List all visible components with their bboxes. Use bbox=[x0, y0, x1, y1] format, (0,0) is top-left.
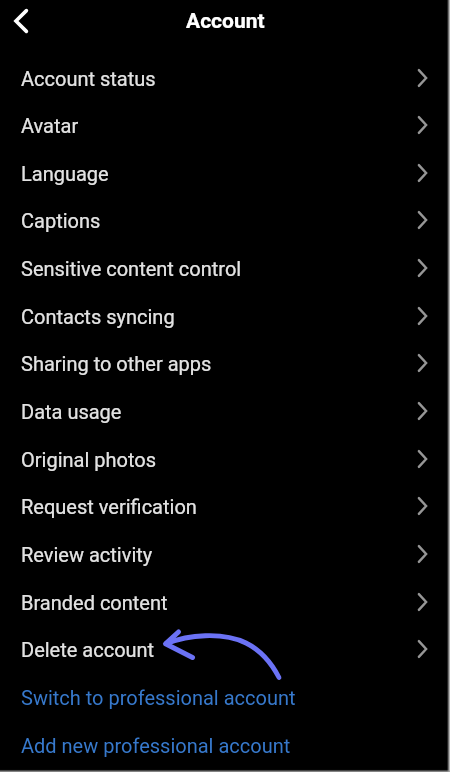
staticText: Language bbox=[21, 162, 109, 185]
staticText: Request verification bbox=[21, 495, 197, 518]
staticText: Contacts syncing bbox=[21, 305, 175, 328]
staticText: Captions bbox=[21, 209, 101, 232]
staticText: Original photos bbox=[21, 448, 156, 471]
button[interactable]: Language bbox=[0, 149, 450, 197]
button[interactable]: Request verification bbox=[0, 482, 450, 530]
staticText: Data usage bbox=[21, 400, 122, 423]
staticText: Avatar bbox=[21, 114, 79, 137]
staticText: Sensitive content control bbox=[21, 257, 242, 280]
button[interactable]: Avatar bbox=[0, 101, 450, 149]
staticText: Account bbox=[186, 9, 265, 34]
button[interactable]: Review activity bbox=[0, 530, 450, 578]
staticText: Account status bbox=[21, 67, 156, 90]
button[interactable]: Account status bbox=[0, 54, 450, 102]
button[interactable]: Contacts syncing bbox=[0, 292, 450, 340]
staticText: Add new professional account bbox=[21, 734, 291, 757]
button[interactable]: Delete account bbox=[0, 625, 450, 673]
button[interactable]: Branded content bbox=[0, 578, 450, 626]
button[interactable]: Back bbox=[5, 5, 37, 37]
button[interactable]: Add new professional account bbox=[0, 721, 450, 769]
button[interactable]: Sharing to other apps bbox=[0, 339, 450, 387]
button[interactable]: Original photos bbox=[0, 435, 450, 483]
button[interactable]: Switch to professional account bbox=[0, 673, 450, 721]
staticText: Delete account bbox=[21, 638, 155, 661]
staticText: Review activity bbox=[21, 543, 153, 566]
button[interactable]: Data usage bbox=[0, 387, 450, 435]
button[interactable]: Sensitive content control bbox=[0, 244, 450, 292]
staticText: Switch to professional account bbox=[21, 686, 296, 709]
staticText: Branded content bbox=[21, 591, 168, 614]
button[interactable]: Captions bbox=[0, 196, 450, 244]
staticText: Sharing to other apps bbox=[21, 352, 212, 375]
